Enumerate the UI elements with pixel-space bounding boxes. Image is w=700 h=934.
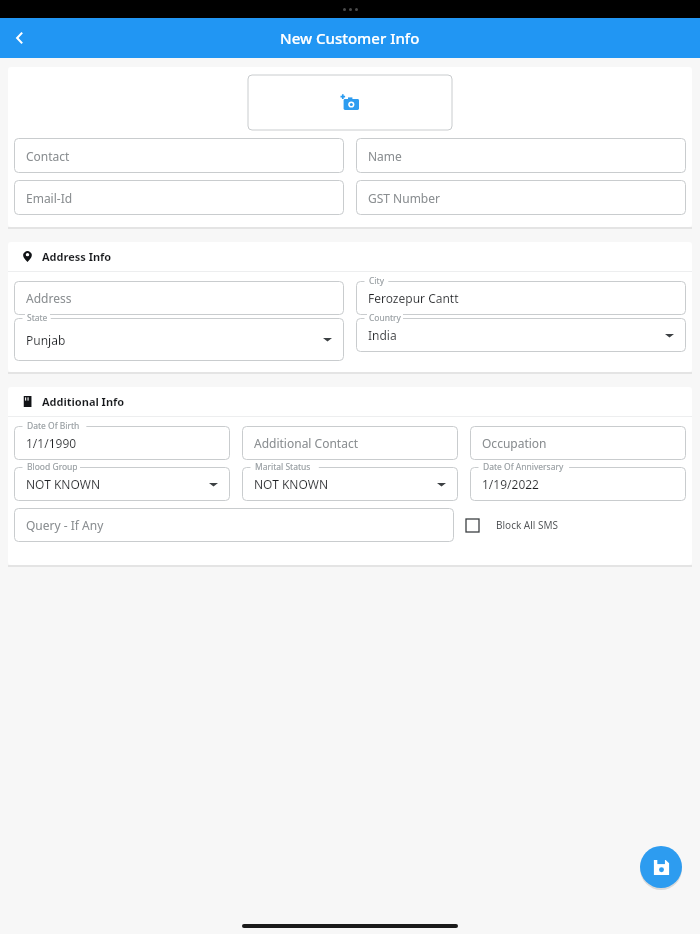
- button[interactable]: Occupation: [470, 426, 686, 460]
- staticText: Additional Contact: [254, 435, 358, 451]
- button[interactable]: Date Of Anniversary: [470, 467, 686, 501]
- staticText: Date Of Anniversary: [483, 461, 564, 473]
- staticText: Occupation: [482, 435, 547, 451]
- button[interactable]: GST Number: [356, 180, 686, 215]
- button[interactable]: Name: [356, 138, 686, 173]
- button[interactable]: Save: [640, 846, 682, 888]
- staticText: Marital Status: [255, 461, 311, 473]
- button[interactable]: Additional Contact: [242, 426, 458, 460]
- staticText: Email-Id: [26, 190, 73, 206]
- staticText: State: [27, 312, 48, 324]
- button[interactable]: State: [14, 318, 344, 361]
- staticText: NOT KNOWN: [254, 476, 329, 492]
- staticText: NOT KNOWN: [26, 476, 101, 492]
- button[interactable]: Email-Id: [14, 180, 344, 215]
- staticText: GST Number: [368, 190, 440, 206]
- button[interactable]: Back: [0, 18, 40, 58]
- staticText: Query - If Any: [26, 517, 104, 533]
- staticText: Punjab: [26, 332, 66, 348]
- button[interactable]: Block All SMS: [466, 508, 686, 542]
- staticText: Blood Group: [27, 461, 78, 473]
- staticText: 1/1/1990: [26, 435, 77, 451]
- staticText: Address: [26, 290, 72, 306]
- staticText: Address Info: [42, 249, 112, 264]
- staticText: Additional Info: [42, 394, 125, 409]
- staticText: Block All SMS: [496, 518, 559, 532]
- staticText: Country: [369, 312, 401, 324]
- button[interactable]: Contact: [14, 138, 344, 173]
- button[interactable]: Date Of Birth: [14, 426, 230, 460]
- staticText: New Customer Info: [280, 28, 420, 48]
- button[interactable]: Country: [356, 318, 686, 352]
- staticText: Date Of Birth: [27, 420, 80, 432]
- button[interactable]: Marital Status: [242, 467, 458, 501]
- staticText: India: [368, 327, 397, 343]
- button[interactable]: City: [356, 281, 686, 315]
- staticText: City: [369, 275, 384, 287]
- button[interactable]: Add photo: [248, 75, 452, 130]
- staticText: 1/19/2022: [482, 476, 539, 492]
- button[interactable]: Blood Group: [14, 467, 230, 501]
- button[interactable]: Address: [14, 281, 344, 315]
- button[interactable]: Query - If Any: [14, 508, 454, 542]
- staticText: Ferozepur Cantt: [368, 290, 459, 306]
- staticText: Name: [368, 148, 402, 164]
- staticText: Contact: [26, 148, 70, 164]
